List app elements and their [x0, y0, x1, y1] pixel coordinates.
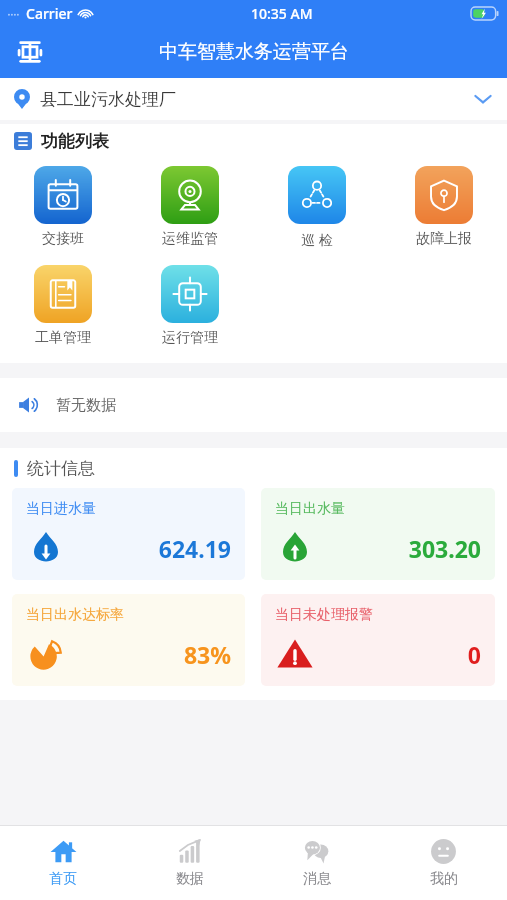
staticText: 县工业污水处理厂 [40, 89, 176, 110]
staticText: 交接班 [42, 230, 84, 248]
button[interactable]: 当日出水达标率 [12, 594, 245, 686]
staticText: 中车智慧水务运营平台 [159, 40, 349, 64]
staticText: 0 [467, 639, 481, 670]
button[interactable]: 当日进水量 [12, 488, 245, 580]
staticText: 当日出水达标率 [26, 606, 124, 624]
staticText: 暂无数据 [56, 396, 116, 415]
staticText: Carrier [26, 4, 73, 23]
button[interactable]: Logo [12, 34, 48, 70]
staticText: 功能列表 [41, 131, 109, 152]
staticText: 消息 [303, 870, 331, 888]
button[interactable]: 运行管理 [126, 257, 253, 355]
staticText: 首页 [49, 870, 77, 888]
staticText: 当日未处理报警 [275, 606, 373, 624]
staticText: 10:35 AM [251, 4, 313, 23]
button[interactable]: 县工业污水处理厂 [0, 78, 507, 120]
staticText: 当日进水量 [26, 500, 96, 518]
staticText: 运维监管 [162, 230, 218, 248]
button[interactable]: 当日未处理报警 [261, 594, 495, 686]
staticText: 83% [183, 639, 231, 670]
button[interactable]: 运维监管 [126, 158, 253, 256]
staticText: 巡 检 [301, 230, 333, 249]
staticText: 数据 [176, 870, 204, 888]
staticText: 故障上报 [416, 230, 472, 248]
staticText: 运行管理 [162, 329, 218, 347]
staticText: 303.20 [408, 533, 481, 564]
button[interactable]: 暂无数据 [0, 378, 507, 432]
button[interactable]: 我的 [380, 826, 507, 900]
staticText: 当日出水量 [275, 500, 345, 518]
button[interactable]: 故障上报 [380, 158, 507, 256]
button[interactable]: 首页 [0, 826, 126, 900]
staticText: 工单管理 [35, 329, 91, 347]
button[interactable]: 巡 检 [253, 158, 380, 257]
staticText: 624.19 [158, 533, 231, 564]
button[interactable]: 消息 [253, 826, 380, 900]
staticText: 统计信息 [27, 458, 95, 479]
button[interactable]: 数据 [126, 826, 253, 900]
button[interactable]: 交接班 [0, 158, 126, 256]
button[interactable]: 当日出水量 [261, 488, 495, 580]
staticText: 我的 [430, 870, 458, 888]
button[interactable]: 工单管理 [0, 257, 126, 355]
